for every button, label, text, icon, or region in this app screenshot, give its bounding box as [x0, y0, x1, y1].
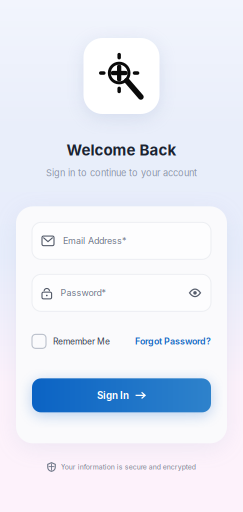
button[interactable]: Forgot Password?: [135, 327, 211, 355]
button[interactable]: Show password: [189, 289, 201, 297]
staticText: Remember Me: [53, 336, 110, 346]
staticText: Email Address*: [63, 235, 126, 246]
staticText: Sign in to continue to your account: [46, 167, 197, 178]
staticText: Sign In: [97, 389, 129, 401]
staticText: Forgot Password?: [135, 336, 211, 347]
button[interactable]: Sign In: [32, 378, 211, 412]
staticText: Your information is secure and encrypted: [61, 463, 196, 471]
button[interactable]: Remember Me: [32, 327, 110, 355]
staticText: Password*: [61, 287, 106, 298]
staticText: Welcome Back: [66, 141, 176, 159]
